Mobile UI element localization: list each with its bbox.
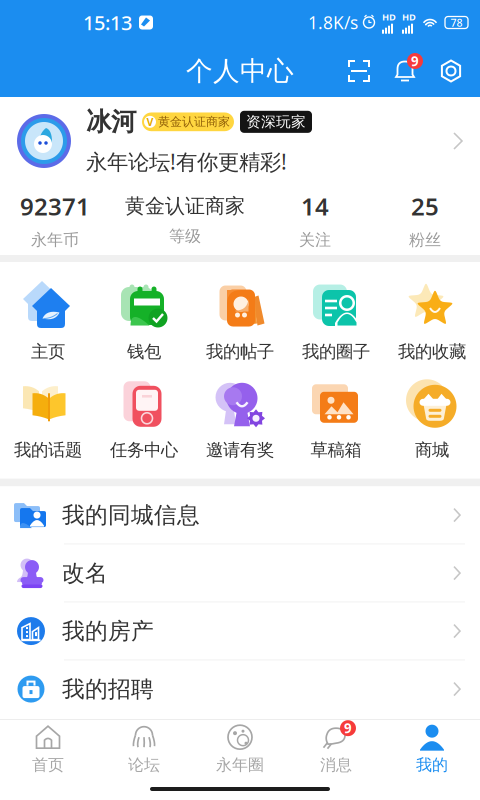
button[interactable]: 永年圈 — [192, 723, 288, 775]
staticText: 我的招聘 — [62, 675, 154, 703]
staticText: 9 — [411, 52, 419, 70]
button[interactable]: 9 — [288, 723, 384, 775]
staticText: 资深玩家 — [246, 113, 306, 131]
staticText: 我的圈子 — [302, 341, 370, 362]
button[interactable]: 钱包 — [96, 280, 192, 362]
staticText: 等级 — [169, 226, 201, 246]
staticText: HD — [382, 11, 396, 23]
staticText: 商城 — [415, 439, 449, 461]
button[interactable]: 我的同城信息 — [0, 487, 480, 545]
staticText: 15:13 — [83, 9, 132, 36]
staticText: 我的房产 — [62, 617, 154, 645]
button[interactable]: 我的 — [384, 723, 480, 775]
staticText: 永年论坛!有你更精彩! — [86, 147, 287, 176]
button[interactable]: 主页 — [0, 280, 96, 362]
button[interactable]: 扫一扫 — [336, 48, 382, 94]
staticText: 永年圈 — [216, 755, 264, 775]
button[interactable]: 92371 — [0, 190, 110, 250]
staticText: 9 — [344, 719, 352, 737]
staticText: 邀请有奖 — [206, 439, 274, 461]
button[interactable]: 黄金认证商家 — [110, 194, 260, 246]
button[interactable]: 我的帖子 — [192, 280, 288, 362]
button[interactable]: 冰河 — [0, 97, 480, 185]
staticText: 我的 — [416, 755, 448, 775]
button[interactable]: 首页 — [0, 723, 96, 775]
staticText: 关注 — [299, 230, 331, 250]
button[interactable]: 我的收藏 — [384, 280, 480, 362]
button[interactable]: 我的圈子 — [288, 280, 384, 362]
staticText: 14 — [301, 190, 329, 222]
staticText: 永年币 — [31, 230, 79, 250]
staticText: 改名 — [62, 559, 108, 587]
button[interactable]: 草稿箱 — [288, 378, 384, 461]
staticText: HD — [402, 11, 416, 23]
staticText: 我的收藏 — [398, 341, 466, 362]
staticText: 个人中心 — [186, 55, 294, 87]
button[interactable]: 我的话题 — [0, 378, 96, 461]
button[interactable]: 设置 — [428, 48, 474, 94]
button[interactable]: 任务中心 — [96, 378, 192, 461]
staticText: 78 — [450, 15, 462, 30]
button[interactable]: 消息通知 — [382, 48, 428, 94]
staticText: 消息 — [320, 755, 352, 775]
staticText: 1.8K/s — [308, 11, 358, 34]
staticText: V — [146, 115, 153, 129]
staticText: 我的同城信息 — [62, 501, 200, 529]
staticText: 粉丝 — [409, 230, 441, 250]
staticText: 冰河 — [86, 106, 136, 137]
staticText: 钱包 — [127, 341, 161, 362]
button[interactable]: 我的房产 — [0, 603, 480, 661]
button[interactable]: 14 — [260, 190, 370, 250]
staticText: 草稿箱 — [310, 439, 361, 461]
button[interactable]: 商城 — [384, 378, 480, 461]
staticText: 首页 — [32, 755, 64, 775]
staticText: 黄金认证商家 — [125, 194, 245, 218]
staticText: 论坛 — [128, 755, 160, 775]
staticText: 任务中心 — [110, 439, 178, 461]
staticText: 我的帖子 — [206, 341, 274, 362]
staticText: 92371 — [20, 190, 90, 222]
button[interactable]: 邀请有奖 — [192, 378, 288, 461]
staticText: 我的话题 — [14, 439, 82, 461]
staticText: 25 — [411, 190, 439, 222]
button[interactable]: 25 — [370, 190, 480, 250]
button[interactable]: 改名 — [0, 545, 480, 603]
button[interactable]: 我的招聘 — [0, 661, 480, 719]
staticText: 黄金认证商家 — [158, 114, 230, 129]
button[interactable]: 论坛 — [96, 723, 192, 775]
staticText: 主页 — [31, 341, 65, 362]
